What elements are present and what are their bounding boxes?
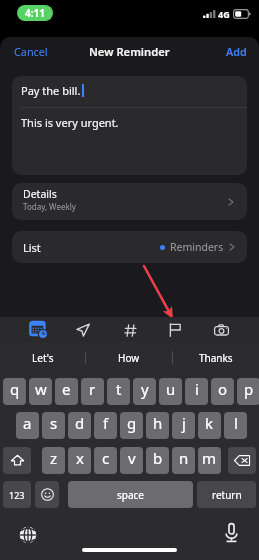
button[interactable]: r — [81, 378, 104, 405]
staticText: Details — [23, 187, 57, 201]
staticText: Thanks — [199, 351, 233, 365]
button[interactable]: o — [211, 378, 234, 405]
staticText: New Reminder — [89, 44, 170, 59]
button[interactable]: i — [185, 378, 208, 405]
staticText: h — [153, 413, 163, 433]
other: Backspace — [234, 455, 250, 466]
staticText: 4:11 — [25, 6, 45, 20]
staticText: 4G — [218, 8, 230, 20]
staticText: List — [23, 240, 41, 255]
staticText: a — [23, 413, 32, 433]
staticText: d — [75, 413, 85, 433]
button[interactable]: Dictation — [218, 520, 244, 546]
staticText: s — [50, 413, 58, 433]
staticText: return — [212, 488, 242, 502]
staticText: y — [141, 379, 149, 399]
button[interactable]: d — [68, 412, 91, 439]
button[interactable]: x — [68, 447, 91, 474]
button[interactable]: Shift — [3, 447, 31, 474]
staticText: g — [127, 413, 137, 433]
staticText: e — [62, 379, 71, 399]
button[interactable]: Cancel — [8, 39, 54, 64]
button[interactable]: c — [94, 447, 117, 474]
staticText: Cancel — [14, 44, 48, 59]
staticText: How — [118, 351, 140, 365]
staticText: Today, Weekly — [23, 201, 76, 212]
staticText: o — [218, 379, 228, 399]
button[interactable]: h — [146, 412, 169, 439]
button[interactable]: e — [55, 378, 78, 405]
staticText: b — [153, 448, 163, 468]
staticText: q — [10, 379, 20, 399]
button[interactable]: 123 — [3, 481, 31, 508]
button[interactable]: Add tag — [117, 317, 143, 343]
button[interactable]: f — [94, 412, 117, 439]
button[interactable]: Add date — [26, 317, 52, 343]
staticText: v — [128, 448, 136, 468]
button[interactable]: y — [133, 378, 156, 405]
staticText: w — [35, 379, 47, 399]
button[interactable]: p — [237, 378, 259, 405]
button[interactable]: return — [197, 481, 256, 508]
staticText: p — [244, 379, 254, 399]
staticText: space — [117, 488, 144, 502]
staticText: i — [195, 379, 199, 399]
button[interactable]: b — [146, 447, 169, 474]
staticText: Let's — [32, 351, 54, 365]
staticText: k — [205, 413, 214, 433]
staticText: f — [103, 413, 109, 433]
button[interactable]: How — [86, 343, 172, 372]
staticText: c — [102, 448, 110, 468]
staticText: r — [89, 379, 96, 399]
button[interactable]: v — [120, 447, 143, 474]
button[interactable]: k — [198, 412, 221, 439]
button[interactable]: l — [224, 412, 247, 439]
button[interactable]: Add photo — [208, 317, 234, 343]
staticText: z — [50, 448, 58, 468]
staticText: Add — [226, 44, 247, 59]
button[interactable]: q — [3, 378, 26, 405]
staticText: Pay the bill. — [21, 83, 81, 98]
staticText: t — [116, 379, 122, 399]
button[interactable]: Backspace — [228, 447, 256, 474]
button[interactable]: m — [198, 447, 221, 474]
button[interactable]: u — [159, 378, 182, 405]
staticText: m — [202, 448, 217, 468]
button[interactable]: Thanks — [173, 343, 259, 372]
button[interactable]: Add location — [70, 317, 96, 343]
button[interactable]: a — [16, 412, 39, 439]
button[interactable]: n — [172, 447, 195, 474]
staticText: u — [166, 379, 176, 399]
button[interactable]: g — [120, 412, 143, 439]
button[interactable]: w — [29, 378, 52, 405]
button[interactable]: Flag — [162, 317, 188, 343]
button[interactable]: Add — [220, 39, 253, 64]
button[interactable]: Emoji — [35, 481, 59, 508]
staticText: l — [234, 413, 238, 433]
staticText: x — [76, 448, 84, 468]
button[interactable]: List — [12, 231, 247, 263]
button[interactable]: j — [172, 412, 195, 439]
staticText: This is very urgent. — [21, 115, 119, 130]
other: Shift — [11, 454, 24, 467]
staticText: n — [179, 448, 189, 468]
staticText: j — [182, 413, 186, 433]
button[interactable]: Details — [12, 183, 247, 220]
button[interactable]: z — [42, 447, 65, 474]
button[interactable]: space — [68, 481, 193, 508]
staticText: Reminders — [170, 240, 224, 254]
staticText: 123 — [9, 489, 25, 501]
button[interactable]: t — [107, 378, 130, 405]
button[interactable]: Next keyboard — [15, 522, 41, 548]
button[interactable]: Let's — [0, 343, 85, 372]
button[interactable]: s — [42, 412, 65, 439]
